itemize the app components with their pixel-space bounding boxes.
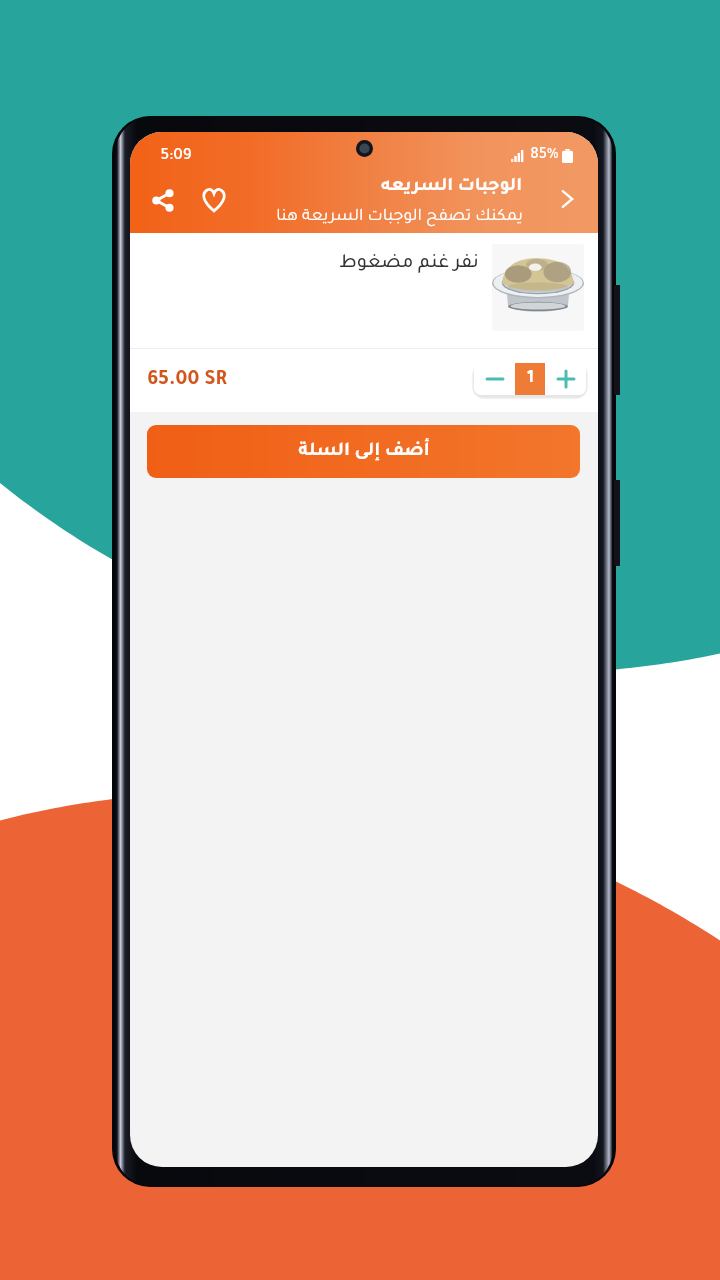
staticText: يمكنك تصفح الوجبات السريعة هنا [276, 209, 523, 227]
button[interactable]: Share [141, 178, 185, 222]
button[interactable]: أضف إلى السلة [147, 425, 580, 478]
button[interactable]: Next [548, 180, 586, 218]
staticText: 1 [527, 370, 534, 388]
staticText: نفر غنم مضغوط [339, 254, 479, 274]
button[interactable]: نفر غنم مضغوط [130, 233, 598, 348]
staticText: 5:09 [160, 148, 192, 165]
staticText: 85% [530, 148, 559, 164]
staticText: أضف إلى السلة [298, 442, 430, 461]
staticText: 65.00 SR [147, 370, 227, 391]
button[interactable]: Increase quantity [545, 363, 586, 395]
button[interactable]: Decrease quantity [474, 363, 515, 395]
staticText: الوجبات السريعه [381, 178, 522, 197]
button[interactable]: Favorite [192, 178, 236, 222]
